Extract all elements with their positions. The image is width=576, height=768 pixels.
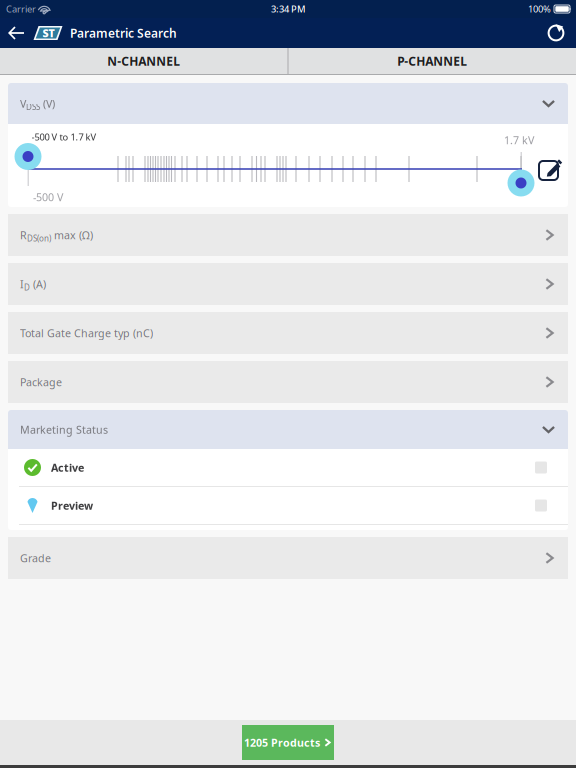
staticText: I	[20, 277, 24, 291]
staticText: Marketing Status	[20, 422, 108, 437]
button[interactable]: Edit range	[539, 158, 563, 182]
button[interactable]: Active	[8, 449, 568, 486]
staticText: 3:34 PM	[271, 3, 306, 15]
button[interactable]: Preview	[8, 487, 568, 524]
staticText: -500 V to 1.7 kV	[31, 131, 96, 143]
staticText: Total Gate Charge typ (nC)	[20, 326, 153, 340]
button[interactable]: Back	[4, 25, 29, 41]
staticText: ST	[42, 26, 54, 40]
button[interactable]: P-CHANNEL	[288, 48, 576, 74]
button[interactable]: Package	[8, 361, 568, 403]
staticText: Parametric Search	[70, 25, 177, 41]
staticText: DSS	[26, 101, 40, 112]
staticText: DS(on)	[27, 233, 51, 244]
staticText: -500 V	[33, 190, 63, 204]
staticText: R	[20, 228, 27, 242]
staticText: 1205 Products	[244, 735, 320, 750]
staticText: 1.7 kV	[504, 133, 534, 147]
button[interactable]: Total Gate Charge typ (nC)	[8, 312, 568, 354]
button[interactable]: R	[8, 214, 568, 256]
staticText: N-CHANNEL	[107, 53, 180, 69]
staticText: Preview	[51, 498, 93, 513]
staticText: (A)	[30, 277, 46, 291]
button[interactable]: N-CHANNEL	[0, 48, 287, 74]
staticText: D	[24, 282, 30, 293]
staticText: Active	[51, 460, 84, 475]
button[interactable]: Marketing Status	[8, 410, 568, 449]
staticText: P-CHANNEL	[397, 53, 467, 69]
button[interactable]: 1205 Products	[242, 725, 334, 760]
staticText: max (Ω)	[51, 228, 93, 242]
staticText: 100%	[528, 3, 551, 15]
button[interactable]: V	[8, 83, 568, 124]
staticText: V	[20, 96, 26, 111]
staticText: Grade	[20, 551, 51, 565]
staticText: (V)	[40, 96, 55, 111]
staticText: Package	[20, 375, 62, 389]
button[interactable]: I	[8, 263, 568, 305]
button[interactable]: Reset filters	[546, 22, 566, 43]
button[interactable]: Grade	[8, 537, 568, 579]
staticText: Carrier	[6, 3, 36, 15]
